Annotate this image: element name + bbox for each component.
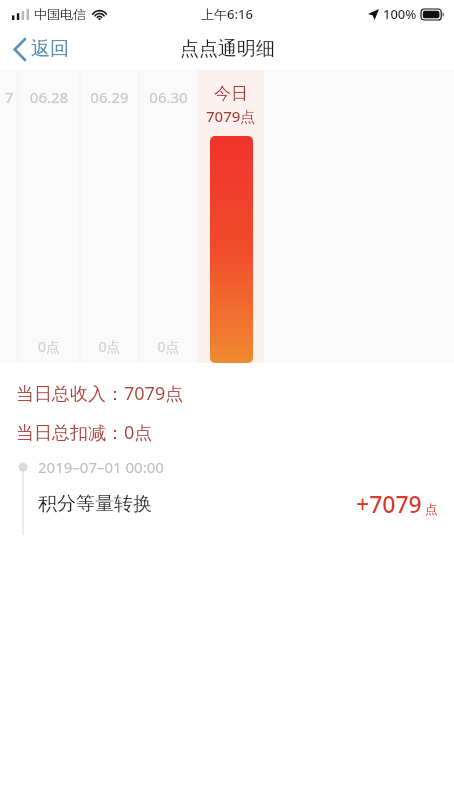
staticText: 7079点 [206, 106, 256, 126]
button[interactable]: 2019–07–01 00:00 [0, 445, 454, 535]
staticText: 0点 [139, 337, 198, 356]
staticText: 积分等量转换 [38, 492, 152, 516]
staticText: 100% [383, 5, 417, 23]
staticText: 中国电信 [34, 6, 86, 22]
staticText: +7079 [356, 488, 422, 519]
staticText: 返回 [31, 37, 69, 61]
staticText: 点 [425, 501, 438, 517]
staticText: 06.29 [80, 87, 139, 107]
button[interactable]: 返回 [0, 33, 83, 65]
staticText: 06.28 [18, 87, 80, 107]
staticText: 当日总收入：7079点 [16, 381, 184, 406]
staticText: 7 [0, 87, 18, 107]
staticText: 当日总扣减：0点 [16, 420, 153, 445]
staticText: 今日 [214, 83, 248, 104]
staticText: 0点 [80, 337, 139, 356]
staticText: 06.30 [139, 87, 198, 107]
staticText: 上午6:16 [201, 5, 253, 23]
staticText: 点点通明细 [180, 37, 275, 61]
staticText: 0点 [18, 337, 80, 356]
staticText: 2019–07–01 00:00 [38, 457, 164, 477]
